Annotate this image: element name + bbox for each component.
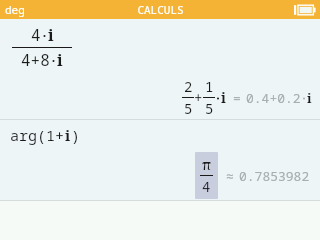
- staticText: 4: [202, 177, 211, 196]
- staticText: ): [71, 125, 81, 145]
- staticText: i: [48, 24, 54, 46]
- staticText: i: [65, 125, 71, 145]
- staticText: 0.7853982: [239, 167, 310, 185]
- staticText: i: [307, 89, 312, 107]
- staticText: 2: [184, 77, 193, 96]
- button[interactable]: π: [195, 152, 218, 199]
- staticText: 4: [31, 24, 41, 46]
- staticText: i: [57, 49, 63, 71]
- staticText: ≈: [226, 167, 234, 185]
- staticText: 5: [205, 99, 214, 118]
- staticText: 4+8: [21, 49, 50, 71]
- button[interactable]: arg(1+: [0, 120, 320, 200]
- staticText: 0.4+0.2: [246, 89, 301, 107]
- staticText: arg(1+: [10, 125, 65, 145]
- staticText: 1: [205, 77, 214, 96]
- button[interactable]: 4: [0, 19, 320, 119]
- staticText: i: [221, 88, 226, 107]
- staticText: =: [233, 89, 241, 107]
- staticText: deg: [5, 2, 25, 17]
- button[interactable]: deg: [5, 2, 25, 17]
- staticText: π: [202, 155, 212, 174]
- staticText: CALCULS: [137, 2, 184, 17]
- staticText: +: [194, 88, 203, 107]
- other: Battery: [294, 4, 316, 16]
- staticText: 5: [184, 99, 193, 118]
